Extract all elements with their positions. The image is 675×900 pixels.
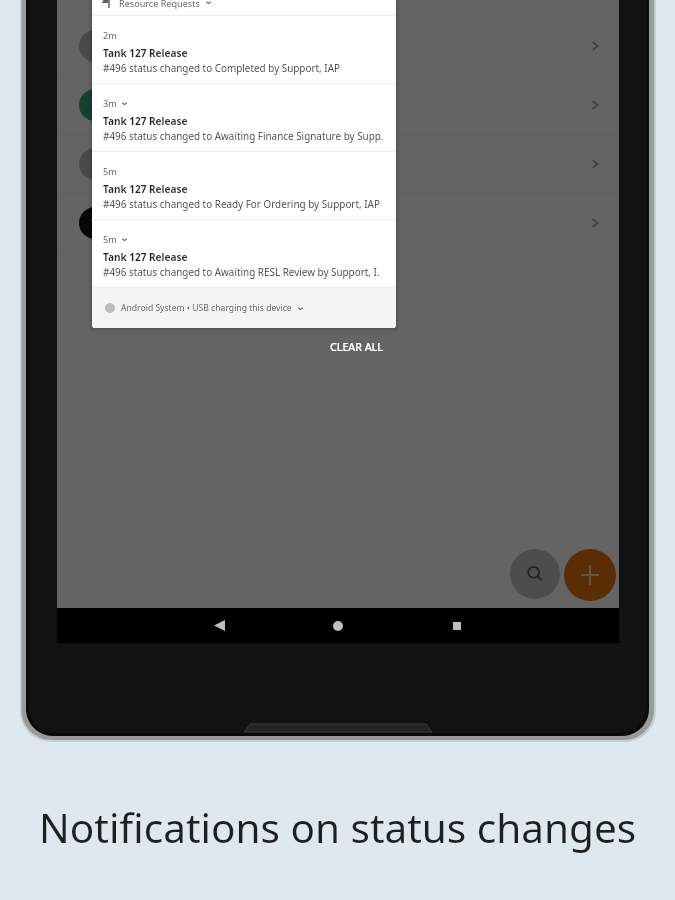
staticText: 5m: [103, 165, 117, 177]
button[interactable]: 2m: [92, 16, 396, 83]
button[interactable]: T: [57, 194, 619, 252]
staticText: #496 status changed to Ready For Orderin…: [103, 197, 380, 210]
button[interactable]: 3m: [92, 84, 396, 151]
button[interactable]: Resource Requests: [92, 0, 396, 15]
staticText: Notifications on status changes: [39, 800, 637, 855]
staticText: Tank 127 Release: [125, 146, 232, 164]
staticText: Tank 127 Release: [103, 250, 188, 264]
staticText: Tank 127 Release: [125, 87, 232, 105]
staticText: Resource Requests: [119, 0, 200, 9]
staticText: 3m: [103, 97, 117, 109]
button[interactable]: Home: [296, 608, 380, 643]
staticText: Android System • USB charging this devic…: [121, 302, 292, 314]
button[interactable]: T: [57, 76, 619, 134]
staticText: T: [91, 155, 99, 173]
button[interactable]: Back: [177, 608, 261, 643]
staticText: #496 Completed by Support: [125, 108, 270, 123]
staticText: T: [91, 214, 99, 232]
button[interactable]: Recents: [415, 608, 499, 643]
staticText: #496 Completed by Support: [125, 49, 270, 64]
staticText: #496 Completed by Support: [125, 226, 270, 241]
button[interactable]: CLEAR ALL: [318, 334, 395, 360]
button[interactable]: Search: [510, 549, 560, 599]
button[interactable]: T: [57, 17, 619, 75]
staticText: #496 status changed to Completed by Supp…: [103, 61, 340, 74]
staticText: Tank 127 Release: [103, 114, 188, 128]
button[interactable]: Add: [564, 549, 616, 601]
staticText: T: [91, 96, 99, 114]
staticText: 5m: [103, 233, 117, 245]
button[interactable]: Android System • USB charging this devic…: [92, 288, 396, 328]
staticText: Tank 127 Release: [103, 182, 188, 196]
staticText: Tank 127 Release: [103, 46, 188, 60]
staticText: #496 status changed to Awaiting Finance …: [103, 129, 384, 142]
staticText: T: [91, 37, 99, 55]
staticText: #496 status changed to Awaiting RESL Rev…: [103, 265, 380, 278]
button[interactable]: T: [57, 135, 619, 193]
staticText: CLEAR ALL: [330, 340, 383, 354]
button[interactable]: 5m: [92, 220, 396, 287]
staticText: Tank 127 Release: [125, 205, 232, 223]
button[interactable]: 5m: [92, 152, 396, 219]
staticText: 2m: [103, 29, 117, 41]
